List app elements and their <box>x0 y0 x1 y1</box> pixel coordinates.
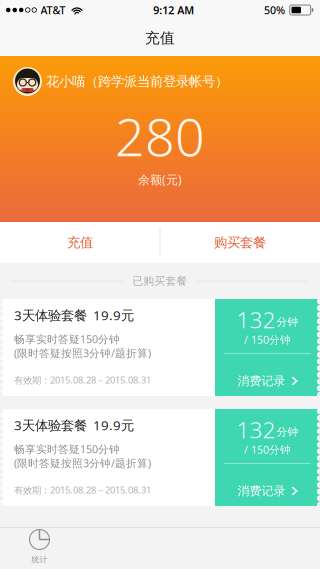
staticText: 花小喵（跨学派当前登录帐号） <box>46 73 228 90</box>
staticText: 3天体验套餐 <box>14 306 87 324</box>
staticText: / 150分钟 <box>244 442 291 457</box>
staticText: 有效期：2015.08.28－2015.08.31 <box>14 374 151 386</box>
button[interactable]: 统计 <box>0 528 79 569</box>
staticText: 19.9元 <box>93 416 134 434</box>
staticText: 余额(元) <box>138 171 182 187</box>
staticText: 消费记录 <box>237 484 285 498</box>
staticText: 分钟 <box>276 315 298 328</box>
staticText: 统计 <box>31 555 47 564</box>
staticText: 购买套餐 <box>214 234 266 251</box>
staticText: 消费记录 <box>237 374 285 388</box>
staticText: 132 <box>236 304 275 334</box>
staticText: (限时答疑按照3分钟/题折算) <box>14 456 151 470</box>
button[interactable]: 购买套餐 <box>160 222 320 263</box>
button[interactable]: 3天体验套餐 <box>0 299 320 396</box>
staticText: 分钟 <box>276 425 298 438</box>
staticText: 9:12 AM <box>153 3 194 17</box>
staticText: 已购买套餐 <box>132 274 187 287</box>
staticText: 畅享实时答疑150分钟 <box>14 332 120 346</box>
staticText: 畅享实时答疑150分钟 <box>14 442 120 456</box>
staticText: / 150分钟 <box>244 332 291 347</box>
button[interactable]: 充值 <box>0 222 160 263</box>
staticText: 充值 <box>145 29 175 47</box>
staticText: 280 <box>115 101 205 171</box>
staticText: 132 <box>236 414 275 444</box>
staticText: 50% <box>264 3 285 17</box>
staticText: AT&T <box>40 3 65 17</box>
staticText: 3天体验套餐 <box>14 416 87 434</box>
staticText: 19.9元 <box>93 306 134 324</box>
staticText: 有效期：2015.08.28－2015.08.31 <box>14 484 151 496</box>
staticText: 充值 <box>67 234 93 251</box>
staticText: (限时答疑按照3分钟/题折算) <box>14 346 151 360</box>
button[interactable]: 3天体验套餐 <box>0 409 320 506</box>
